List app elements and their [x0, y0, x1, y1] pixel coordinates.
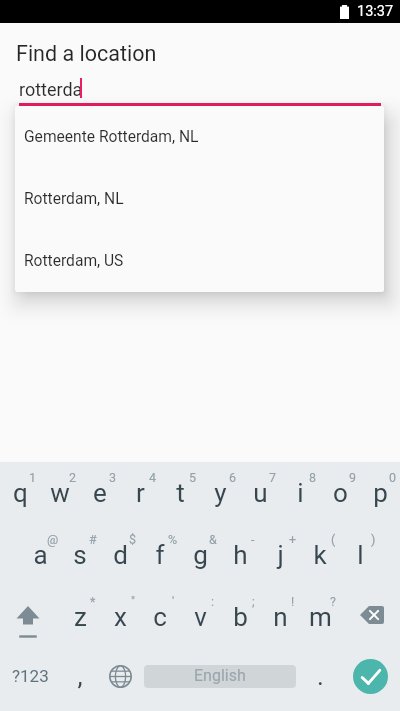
button[interactable]: o [320, 462, 360, 524]
staticText: * [90, 594, 96, 609]
button[interactable]: c [140, 586, 180, 648]
staticText: b [233, 602, 248, 632]
button[interactable]: a [20, 524, 60, 586]
button[interactable]: i [280, 462, 320, 524]
staticText: 2 [69, 470, 77, 485]
staticText: k [313, 540, 327, 570]
button[interactable]: r [120, 462, 160, 524]
button[interactable]: n [260, 586, 300, 648]
button[interactable]: j [260, 524, 300, 586]
staticText: . [317, 661, 324, 691]
staticText: z [74, 602, 87, 632]
staticText: ) [371, 532, 376, 547]
button[interactable]: u [240, 462, 280, 524]
button[interactable]: ?123 [0, 648, 60, 710]
staticText: English [194, 666, 246, 685]
staticText: 0 [389, 470, 397, 485]
staticText: 5 [189, 470, 197, 485]
button[interactable]: Change keyboard language [100, 648, 140, 710]
button[interactable]: z [60, 586, 100, 648]
staticText: % [168, 532, 178, 547]
staticText: t [176, 478, 185, 508]
staticText: # [89, 532, 97, 547]
button[interactable]: d [100, 524, 140, 586]
staticText: @ [47, 532, 59, 547]
button[interactable]: y [200, 462, 240, 524]
button[interactable]: Rotterdam, US [15, 230, 384, 292]
staticText: g [193, 540, 208, 570]
button[interactable]: x [100, 586, 140, 648]
staticText: i [297, 478, 304, 508]
staticText: Gemeente Rotterdam, NL [24, 128, 199, 146]
staticText: x [114, 602, 127, 632]
other: Battery [340, 5, 349, 19]
staticText: ! [291, 594, 295, 609]
button[interactable]: v [180, 586, 220, 648]
staticText: $ [129, 532, 137, 547]
button[interactable]: l [340, 524, 380, 586]
button[interactable]: . [300, 648, 340, 710]
staticText: 9 [349, 470, 357, 485]
staticText: ' [172, 594, 175, 609]
button[interactable]: , [60, 648, 100, 710]
staticText: y [214, 478, 227, 508]
staticText: j [277, 540, 284, 570]
staticText: e [93, 478, 107, 508]
staticText: w [50, 478, 70, 508]
staticText: 7 [269, 470, 277, 485]
button[interactable]: Done [353, 659, 388, 694]
staticText: rotterda [19, 79, 83, 100]
staticText: Rotterdam, US [24, 252, 124, 270]
staticText: p [373, 478, 388, 508]
button[interactable]: g [180, 524, 220, 586]
staticText: 13:37 [357, 3, 394, 20]
staticText: r [136, 478, 145, 508]
staticText: a [33, 540, 48, 570]
staticText: ?123 [12, 666, 49, 686]
staticText: 6 [229, 470, 237, 485]
button[interactable]: m [300, 586, 340, 648]
button[interactable]: Rotterdam, NL [15, 168, 384, 230]
button[interactable]: b [220, 586, 260, 648]
button[interactable]: t [160, 462, 200, 524]
staticText: u [253, 478, 268, 508]
staticText: - [251, 532, 255, 547]
button[interactable]: Shift [0, 586, 60, 648]
staticText: 4 [149, 470, 157, 485]
staticText: 8 [309, 470, 317, 485]
staticText: + [289, 532, 297, 547]
staticText: v [194, 602, 207, 632]
button[interactable]: h [220, 524, 260, 586]
staticText: ; [252, 594, 255, 609]
button[interactable]: p [360, 462, 400, 524]
staticText: : [211, 594, 215, 609]
staticText: ( [331, 532, 336, 547]
staticText: d [113, 540, 128, 570]
staticText: Find a location [16, 41, 157, 66]
staticText: h [233, 540, 248, 570]
staticText: ? [330, 594, 336, 609]
button[interactable]: Backspace [340, 586, 400, 648]
staticText: 3 [109, 470, 117, 485]
staticText: c [153, 602, 167, 632]
button[interactable]: w [40, 462, 80, 524]
button[interactable]: q [0, 462, 40, 524]
staticText: 1 [29, 470, 37, 485]
button[interactable]: e [80, 462, 120, 524]
staticText: n [273, 602, 288, 632]
button[interactable]: s [60, 524, 100, 586]
staticText: q [13, 478, 28, 508]
staticText: & [209, 532, 217, 547]
staticText: " [131, 594, 136, 609]
staticText: o [333, 478, 348, 508]
button[interactable]: Gemeente Rotterdam, NL [15, 106, 384, 168]
button[interactable]: k [300, 524, 340, 586]
staticText: m [309, 602, 332, 632]
staticText: f [155, 540, 165, 570]
staticText: Rotterdam, NL [24, 190, 124, 208]
staticText: , [77, 661, 83, 691]
staticText: s [73, 540, 87, 570]
button[interactable]: English [140, 648, 300, 710]
staticText: l [357, 540, 364, 570]
button[interactable]: f [140, 524, 180, 586]
